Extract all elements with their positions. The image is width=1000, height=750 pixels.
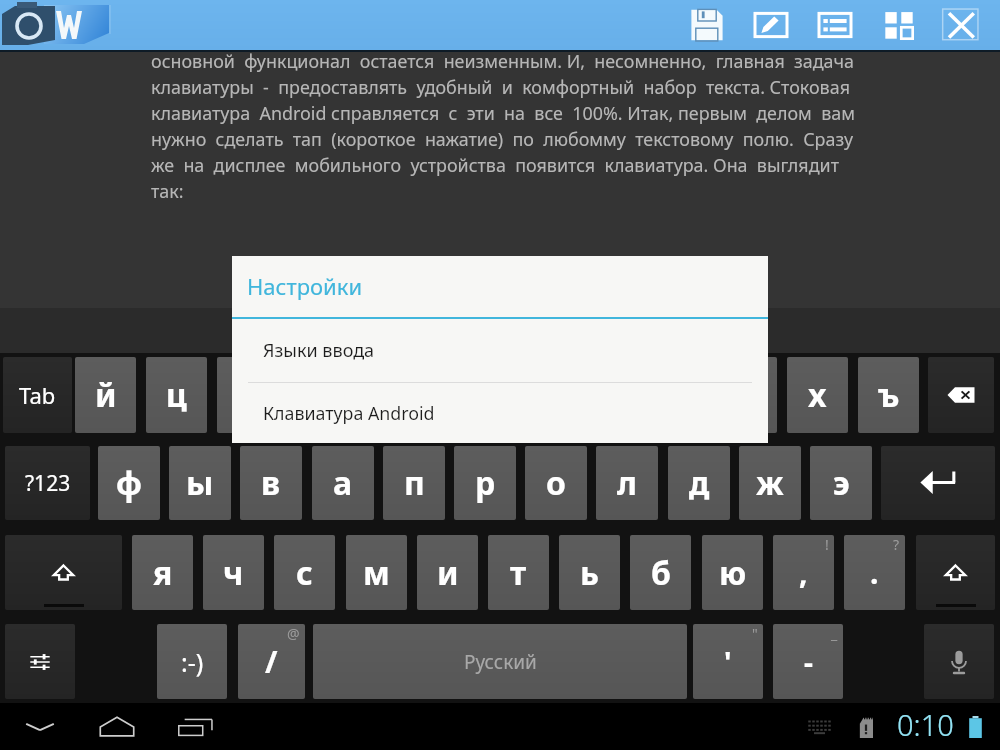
staticText: ф	[116, 461, 142, 505]
button[interactable]: Edit	[739, 0, 803, 50]
staticText: нужно сделать тап (короткое нажатие) по …	[151, 127, 854, 151]
button[interactable]: ,	[773, 535, 834, 610]
staticText: п	[404, 461, 425, 505]
button[interactable]: д	[668, 446, 730, 520]
button[interactable]: н	[431, 357, 492, 433]
staticText: ?	[893, 535, 900, 554]
staticText: /	[265, 641, 278, 682]
button[interactable]: т	[488, 535, 549, 610]
button[interactable]: Tab	[3, 357, 72, 433]
staticText: е	[381, 373, 400, 417]
button[interactable]: ъ	[858, 357, 919, 433]
button[interactable]: Клавиатура Android	[232, 383, 768, 443]
button[interactable]: щ	[645, 357, 706, 433]
button[interactable]: з	[716, 357, 777, 433]
button[interactable]: а	[312, 446, 374, 520]
button[interactable]: /	[238, 624, 305, 699]
staticText: ь	[580, 551, 599, 595]
staticText: ж	[756, 461, 784, 505]
staticText: о	[546, 461, 566, 505]
button[interactable]: Shift	[5, 535, 122, 610]
staticText: клавиатура Android справляется с эти на …	[151, 101, 855, 125]
staticText: в	[261, 461, 281, 505]
button[interactable]: у	[217, 357, 278, 433]
button[interactable]: е	[360, 357, 421, 433]
staticText: же на дисплее мобильного устройства появ…	[151, 153, 839, 177]
button[interactable]: о	[525, 446, 587, 520]
button[interactable]: й	[75, 357, 136, 433]
staticText: ,	[799, 552, 808, 593]
staticText: д	[689, 461, 710, 505]
button[interactable]: с	[274, 535, 335, 610]
staticText: '	[724, 643, 732, 681]
staticText: г	[525, 373, 541, 417]
button[interactable]: р	[454, 446, 516, 520]
staticText: м	[363, 551, 390, 595]
staticText: "	[752, 624, 758, 643]
button[interactable]: ж	[739, 446, 801, 520]
button[interactable]: Grid	[867, 0, 931, 50]
staticText: ц	[166, 373, 187, 417]
button[interactable]: ц	[146, 357, 207, 433]
button[interactable]: List	[803, 0, 867, 50]
staticText: т	[510, 551, 527, 595]
button[interactable]: х	[787, 357, 848, 433]
staticText: Настройки	[247, 271, 363, 301]
button[interactable]: Языки ввода	[232, 319, 768, 382]
button[interactable]: Enter	[881, 446, 995, 520]
button[interactable]: Русский	[313, 624, 687, 699]
button[interactable]: ы	[169, 446, 231, 520]
button[interactable]: ч	[203, 535, 264, 610]
button[interactable]: Voice input	[924, 624, 994, 699]
button[interactable]: ?123	[5, 446, 90, 520]
button[interactable]: л	[596, 446, 658, 520]
button[interactable]: .	[844, 535, 905, 610]
staticText: Русский	[464, 649, 537, 675]
staticText: и	[437, 551, 459, 595]
staticText: с	[296, 551, 313, 595]
staticText: щ	[660, 373, 691, 417]
button[interactable]: Recent apps	[159, 703, 233, 750]
staticText: ю	[719, 551, 747, 595]
button[interactable]: Backspace	[928, 357, 994, 433]
button[interactable]: м	[346, 535, 407, 610]
button[interactable]: Hide keyboard	[3, 703, 77, 750]
staticText: х	[808, 373, 827, 417]
staticText: н	[451, 373, 472, 417]
button[interactable]: Save	[675, 0, 739, 50]
staticText: а	[333, 461, 353, 505]
button[interactable]: App logo	[0, 0, 115, 50]
button[interactable]: ю	[702, 535, 763, 610]
staticText: клавиатуры - предоставлять удобный и ком…	[151, 75, 850, 99]
button[interactable]: г	[502, 357, 563, 433]
staticText: Tab	[19, 380, 56, 410]
button[interactable]: б	[630, 535, 691, 610]
button[interactable]: ш	[573, 357, 634, 433]
staticText: ш	[588, 373, 619, 417]
staticText: з	[738, 373, 755, 417]
staticText: 0:10	[897, 705, 954, 744]
staticText: -	[804, 643, 813, 681]
button[interactable]: -	[773, 624, 843, 699]
button[interactable]: Input settings	[5, 624, 75, 699]
button[interactable]: п	[383, 446, 445, 520]
button[interactable]: Home	[80, 703, 154, 750]
button[interactable]: ф	[98, 446, 160, 520]
button[interactable]: '	[693, 624, 763, 699]
staticText: р	[475, 461, 496, 505]
button[interactable]: Close	[931, 0, 993, 50]
staticText: @	[287, 624, 300, 643]
button[interactable]: в	[240, 446, 302, 520]
button[interactable]: Shift	[916, 535, 995, 610]
staticText: б	[651, 551, 671, 595]
button[interactable]: ь	[559, 535, 620, 610]
button[interactable]: э	[810, 446, 872, 520]
button[interactable]: и	[417, 535, 478, 610]
staticText: _	[831, 624, 838, 643]
button[interactable]: :-)	[157, 624, 227, 699]
staticText: ч	[223, 551, 244, 595]
staticText: й	[95, 373, 117, 417]
button[interactable]: я	[132, 535, 193, 610]
button[interactable]: к	[289, 357, 350, 433]
